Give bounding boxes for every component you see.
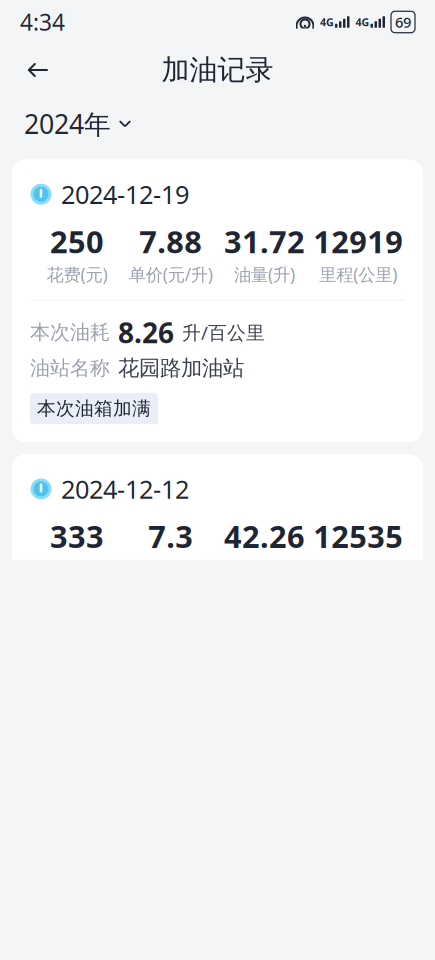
staticText: 2024年 (24, 106, 111, 141)
staticText: 里程(公里) (319, 263, 397, 286)
staticText: 4:34 (20, 7, 65, 37)
staticText: 油量(升) (234, 263, 295, 286)
staticText: 4G (355, 15, 369, 29)
staticText: 本次油耗 (30, 320, 110, 345)
staticText: 花费(元) (46, 263, 107, 286)
button[interactable]: 2024年 (24, 100, 132, 147)
button[interactable]: 2024-12-12 (12, 454, 423, 739)
staticText: 8.26 (118, 314, 174, 351)
staticText: 69 (395, 12, 411, 32)
staticText: 油站名称 (30, 356, 110, 380)
staticText: 7.88 (139, 221, 202, 262)
staticText: 7.3 (148, 516, 193, 556)
staticText: 本次油箱加满 (37, 397, 151, 420)
staticText: 12535 (313, 516, 403, 556)
staticText: 花园路加油站 (118, 355, 244, 381)
staticText: 333 (50, 516, 104, 556)
staticText: 42.26 (224, 516, 305, 556)
staticText: 31.72 (224, 221, 305, 262)
button[interactable]: Back (16, 48, 60, 92)
staticText: 12919 (313, 221, 403, 262)
staticText: 4G (320, 15, 334, 29)
staticText: 加油记录 (161, 53, 273, 87)
button[interactable]: 2024-12-19 (12, 159, 423, 442)
staticText: 2024-12-12 (61, 472, 189, 506)
staticText: 250 (50, 221, 104, 262)
staticText: 升/百公里 (182, 320, 265, 345)
staticText: 2024-12-19 (61, 177, 189, 211)
staticText: 单价(元/升) (129, 263, 213, 286)
